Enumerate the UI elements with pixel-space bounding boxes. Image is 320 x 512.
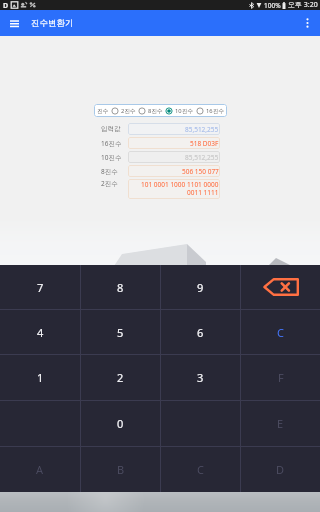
staticText: 10진수 [101,153,122,162]
button[interactable]: 2진수 [111,104,136,117]
button[interactable]: 16진수 [196,104,225,117]
button[interactable]: 506 150 077 [131,165,219,177]
button[interactable]: 8진수 [138,104,163,117]
staticText: 입력값 [101,125,121,133]
staticText: 85,512,255 [185,125,219,134]
button[interactable]: 8 [81,265,160,309]
button[interactable]: 1 [0,355,80,400]
staticText: 5 [117,325,124,340]
button[interactable]: 2 [81,355,160,400]
staticText: 7 [37,280,44,295]
staticText: 6 [197,325,204,340]
button[interactable]: More options [298,14,316,32]
staticText: C [197,462,204,477]
staticText: D [276,462,285,477]
staticText: 101 0001 1000 1101 0000 [141,180,219,188]
staticText: E [277,416,284,431]
staticText: 10진수 [175,107,194,115]
staticText: 2진수 [101,179,118,188]
staticText: 1 [37,370,44,385]
button[interactable]: 4 [0,310,80,354]
staticText: 0011 1111 [187,188,219,196]
button[interactable]: 85,512,255 [131,151,219,163]
staticText: 3 [197,370,204,385]
staticText: 진수변환기 [31,18,74,29]
staticText: 16진수 [206,107,225,115]
button[interactable]: 85,512,255 [131,123,219,135]
staticText: 100% [264,1,281,10]
staticText: 9 [197,280,204,295]
staticText: F [278,370,284,385]
staticText: 518 D03F [190,139,219,148]
staticText: 16진수 [101,139,122,148]
staticText: A [36,462,44,477]
staticText: 진수 [97,107,109,114]
button[interactable]: 6 [161,310,240,354]
staticText: 0 [117,416,124,431]
staticText: 8 [117,280,124,295]
staticText: 2 [117,370,124,385]
button[interactable]: B [81,447,160,492]
staticText: 8진수 [148,107,163,115]
staticText: B [117,462,125,477]
button[interactable]: 5 [81,310,160,354]
button[interactable]: C [241,310,320,354]
staticText: D [3,1,9,9]
button[interactable]: Backspace [241,265,320,309]
button[interactable]: 9 [161,265,240,309]
button[interactable]: 10진수 [165,104,194,117]
staticText: 오후 3:20 [288,0,318,10]
staticText: 2진수 [121,107,136,115]
button[interactable]: 7 [0,265,80,309]
staticText: 4 [37,325,44,340]
staticText: C [277,325,284,340]
button[interactable]: 101 0001 1000 1101 0000 [131,179,219,199]
button[interactable]: Open navigation menu [5,14,23,32]
button[interactable]: 3 [161,355,240,400]
other: Backspace [241,265,320,309]
staticText: 8진수 [101,167,118,176]
button[interactable]: 518 D03F [131,137,219,149]
staticText: 506 150 077 [182,167,219,176]
button[interactable]: 0 [81,401,160,446]
staticText: 85,512,255 [185,153,219,162]
